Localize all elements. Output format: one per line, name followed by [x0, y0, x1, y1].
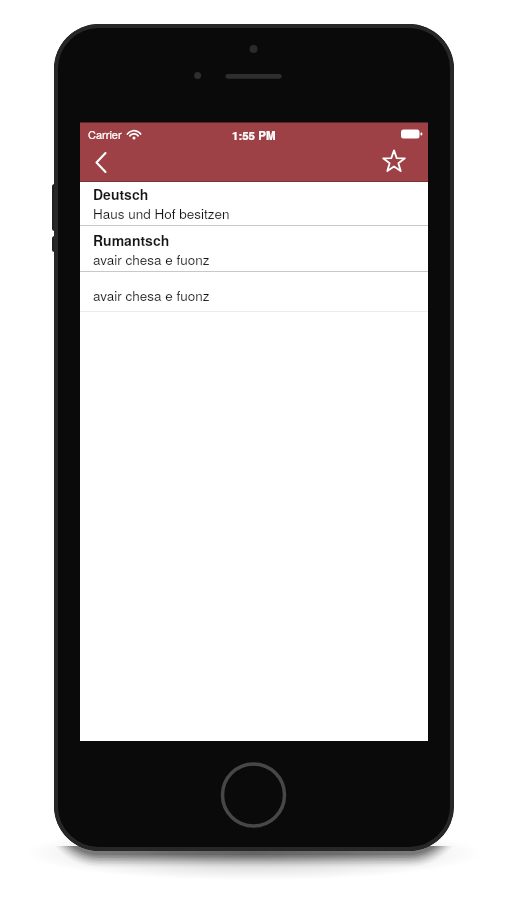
- button[interactable]: avair chesa e fuonz: [80, 282, 428, 311]
- staticText: Carrier: [88, 126, 122, 142]
- staticText: avair chesa e fuonz: [93, 250, 210, 269]
- button[interactable]: [378, 146, 410, 178]
- staticText: 1:55 PM: [232, 127, 276, 143]
- staticText: Rumantsch: [93, 230, 170, 250]
- button[interactable]: [85, 146, 117, 178]
- button[interactable]: Rumantsch: [80, 226, 428, 271]
- button[interactable]: Deutsch: [80, 182, 428, 225]
- staticText: Haus und Hof besitzen: [93, 204, 230, 223]
- staticText: avair chesa e fuonz: [93, 286, 210, 305]
- staticText: Deutsch: [93, 184, 149, 204]
